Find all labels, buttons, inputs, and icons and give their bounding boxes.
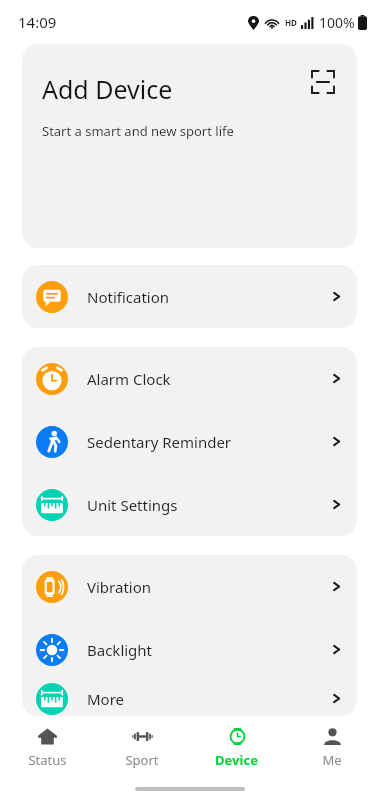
staticText: Backlight bbox=[87, 640, 153, 660]
button[interactable]: Scan QR code bbox=[307, 66, 339, 98]
staticText: 14:09 bbox=[18, 12, 57, 32]
button[interactable]: Device bbox=[189, 716, 284, 778]
staticText: More bbox=[87, 689, 125, 709]
staticText: Add Device bbox=[42, 72, 173, 106]
staticText: Status bbox=[28, 751, 67, 769]
staticText: Notification bbox=[87, 287, 170, 307]
staticText: Device bbox=[215, 751, 258, 769]
staticText: Sedentary Reminder bbox=[87, 432, 232, 452]
button[interactable]: Notification bbox=[22, 265, 357, 328]
staticText: Me bbox=[322, 751, 342, 769]
staticText: Start a smart and new sport life bbox=[42, 122, 234, 140]
staticText: Alarm Clock bbox=[87, 369, 171, 389]
staticText: HD bbox=[285, 17, 297, 28]
button[interactable]: Sport bbox=[94, 716, 189, 778]
staticText: Sport bbox=[125, 751, 159, 769]
button[interactable]: Vibration bbox=[22, 555, 357, 618]
button[interactable]: More bbox=[22, 681, 357, 716]
button[interactable]: Alarm Clock bbox=[22, 347, 357, 410]
button[interactable]: Sedentary Reminder bbox=[22, 410, 357, 473]
button[interactable]: Backlight bbox=[22, 618, 357, 681]
button[interactable]: Me bbox=[284, 716, 379, 778]
staticText: Unit Settings bbox=[87, 495, 178, 515]
staticText: Vibration bbox=[87, 577, 152, 597]
button[interactable]: Status bbox=[0, 716, 94, 778]
button[interactable]: Add Device bbox=[22, 44, 357, 248]
button[interactable]: Unit Settings bbox=[22, 473, 357, 536]
staticText: 100% bbox=[319, 13, 355, 32]
